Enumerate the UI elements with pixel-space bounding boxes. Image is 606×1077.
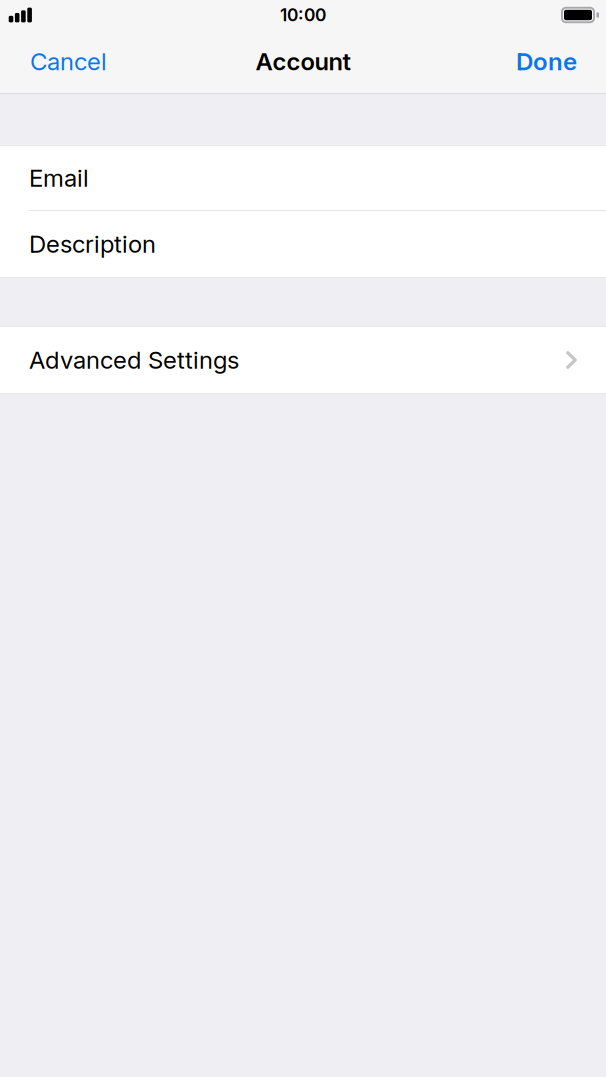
button[interactable]: Done <box>500 30 593 93</box>
staticText: 10:00 <box>280 4 326 25</box>
button[interactable]: Email <box>0 146 606 210</box>
button[interactable]: Cancel <box>14 30 123 93</box>
staticText: Email <box>29 163 89 192</box>
staticText: Description <box>29 229 156 258</box>
staticText: Cancel <box>30 47 107 76</box>
button[interactable]: Advanced Settings <box>0 327 606 393</box>
button[interactable]: Description <box>0 211 606 277</box>
staticText: Done <box>516 47 577 76</box>
staticText: Advanced Settings <box>29 345 239 374</box>
staticText: Account <box>255 47 350 76</box>
